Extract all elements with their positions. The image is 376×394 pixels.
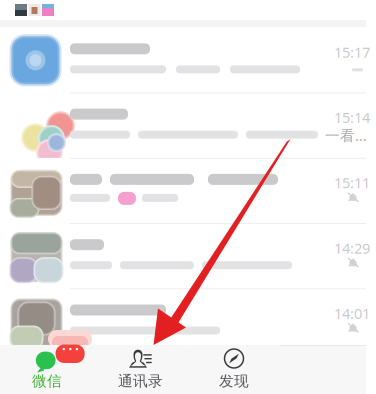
button[interactable]: 15:11 — [0, 0, 366, 65]
staticText: 14:01 — [334, 303, 370, 323]
staticText: 14:29 — [334, 238, 370, 258]
button[interactable]: 15:17 — [0, 0, 366, 65]
staticText: 15:14 — [334, 108, 370, 127]
staticText: 发现 — [219, 372, 249, 390]
button[interactable]: 14:29 — [0, 0, 366, 65]
staticText: 15:17 — [334, 42, 370, 62]
staticText: 通讯录 — [118, 372, 163, 390]
staticText: 微信 — [32, 372, 62, 390]
button[interactable]: 15:14 — [0, 0, 366, 65]
button[interactable]: 微信 — [0, 345, 93, 394]
staticText: 一看… — [325, 126, 367, 145]
button[interactable]: 发现 — [187, 345, 280, 394]
button[interactable]: 通讯录 — [94, 345, 187, 394]
button[interactable]: 14:01 — [0, 0, 366, 65]
staticText: 15:11 — [334, 173, 370, 192]
